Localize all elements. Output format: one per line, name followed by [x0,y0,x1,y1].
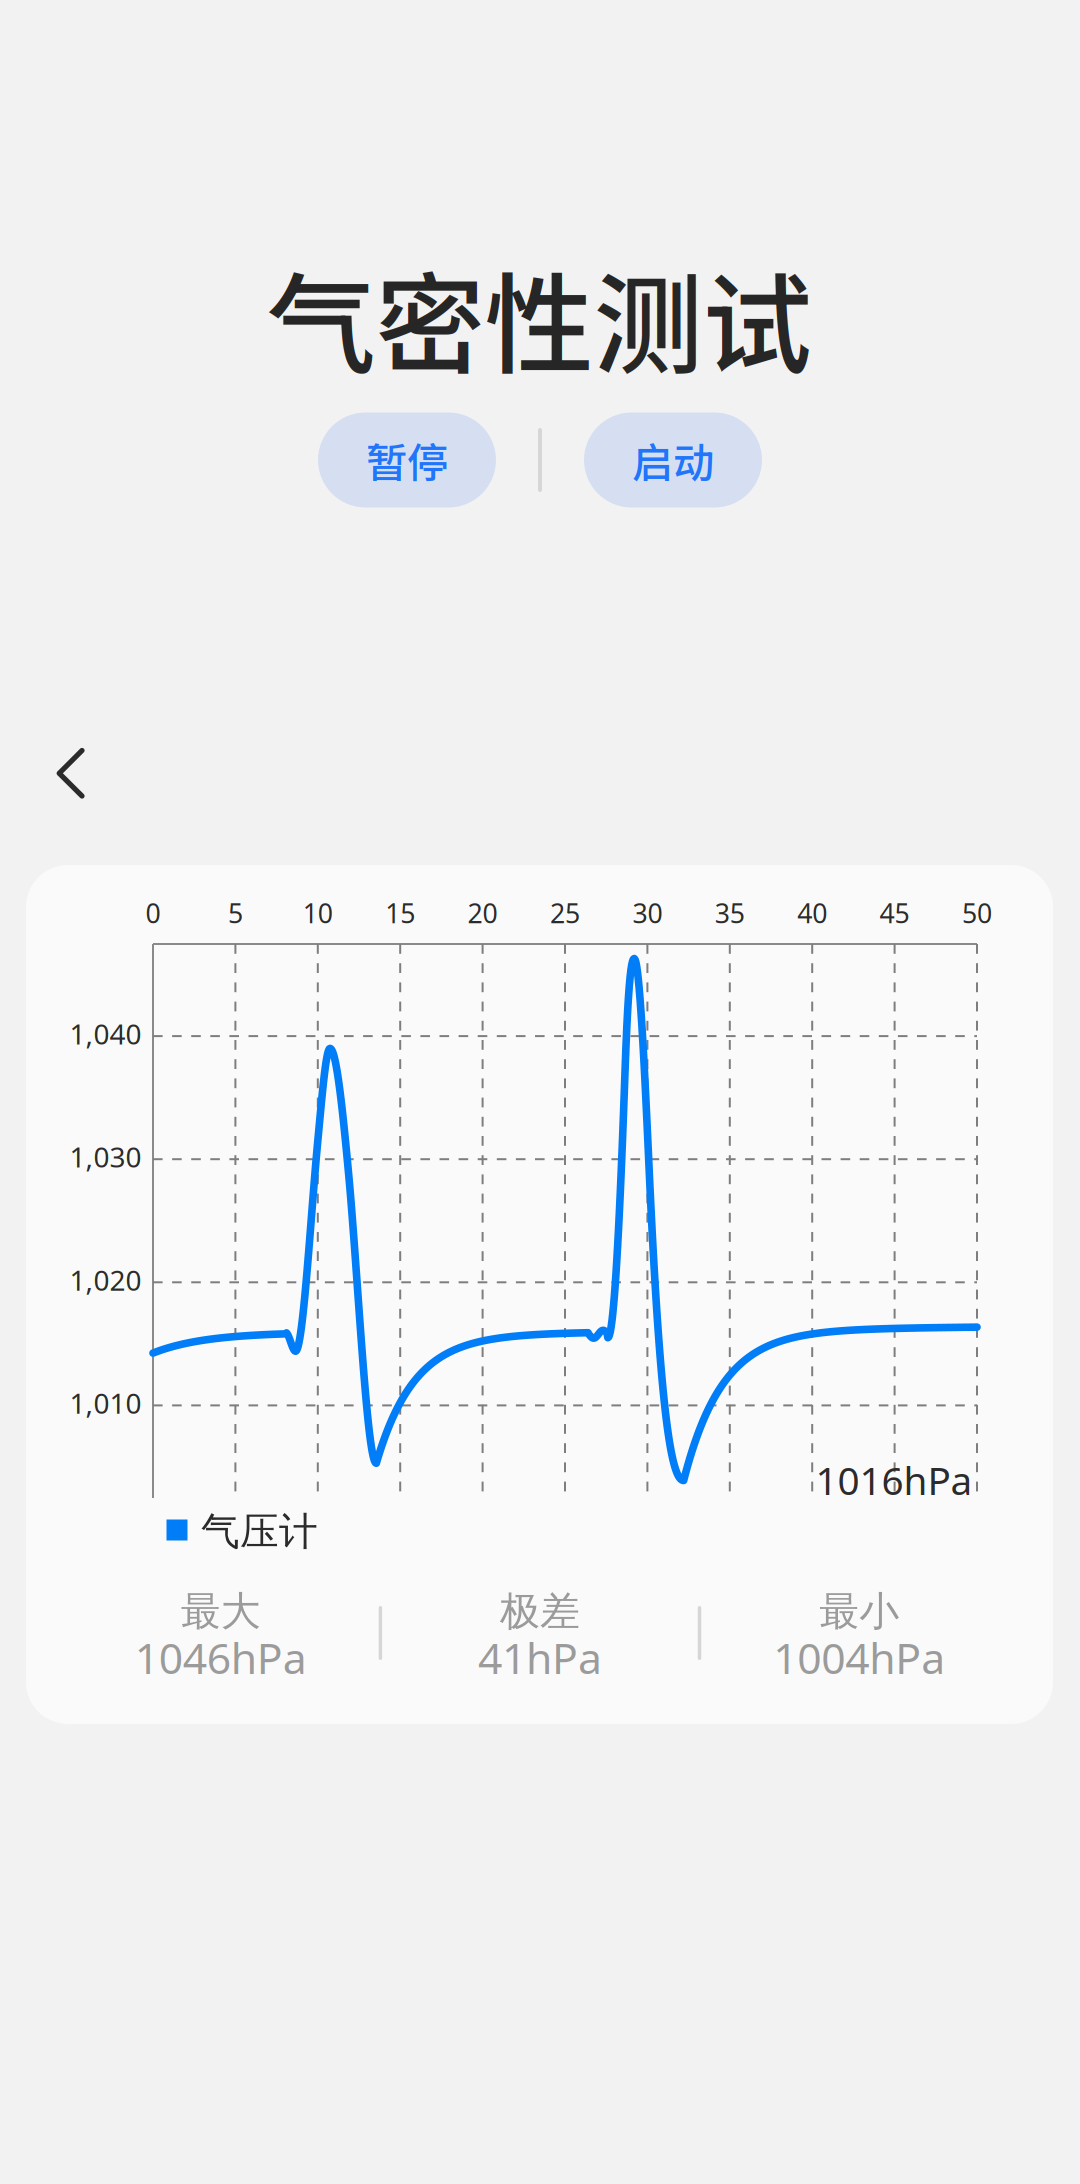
staticText: 1,020 [69,1261,141,1298]
staticText: 1,030 [69,1138,141,1175]
staticText: 1,010 [69,1384,141,1421]
staticText: 气密性测试 [266,238,811,396]
staticText: 5 [228,895,243,931]
staticText: 1004hPa [773,1629,945,1686]
staticText: 暂停 [366,430,448,490]
button[interactable]: 返回 [0,0,1080,2184]
staticText: 0 [145,895,160,931]
staticText: 15 [385,895,415,931]
staticText: 40 [797,895,827,931]
button[interactable]: 暂停 [318,412,496,507]
button[interactable]: 启动 [584,412,762,507]
staticText: 最小 [819,1587,899,1636]
staticText: 气压计 [201,1508,318,1555]
staticText: 35 [715,895,745,931]
staticText: 20 [468,895,498,931]
staticText: 1046hPa [135,1629,307,1686]
staticText: 启动 [632,430,714,490]
staticText: 30 [632,895,662,931]
staticText: 1,040 [69,1015,141,1052]
staticText: 最大 [181,1587,261,1636]
staticText: 极差 [500,1587,580,1636]
staticText: 50 [962,895,992,931]
staticText: 41hPa [478,1629,602,1686]
staticText: 45 [880,895,910,931]
staticText: 1016hPa [815,1454,972,1506]
staticText: 10 [303,895,333,931]
staticText: 25 [550,895,580,931]
